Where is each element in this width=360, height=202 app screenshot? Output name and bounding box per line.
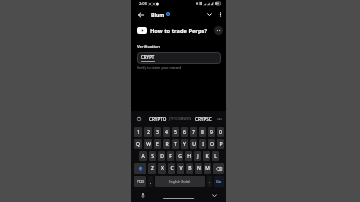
- button[interactable]: M: [204, 163, 211, 174]
- button[interactable]: T: [172, 139, 179, 149]
- button[interactable]: V: [177, 163, 184, 174]
- button[interactable]: Shift: [134, 163, 146, 174]
- button[interactable]: F: [167, 151, 174, 161]
- button[interactable]: 3: [154, 127, 161, 137]
- button[interactable]: Back: [135, 9, 146, 20]
- staticText: Go: [216, 179, 222, 184]
- staticText: F: [169, 153, 172, 160]
- button[interactable]: R: [163, 139, 170, 149]
- button[interactable]: 1: [134, 127, 142, 137]
- staticText: O: [210, 141, 214, 148]
- staticText: B: [188, 165, 192, 172]
- button[interactable]: 6: [181, 127, 188, 137]
- button[interactable]: CRYPTO: [146, 111, 169, 126]
- staticText: G: [178, 153, 182, 160]
- button[interactable]: Expand: [204, 9, 215, 20]
- button[interactable]: N: [195, 163, 202, 174]
- button[interactable]: Go: [214, 176, 224, 187]
- button[interactable]: P: [217, 139, 224, 149]
- button[interactable]: CRYPSC: [192, 111, 215, 126]
- button[interactable]: 8: [199, 127, 206, 137]
- button[interactable]: O: [208, 139, 215, 149]
- staticText: 0: [219, 129, 222, 136]
- button[interactable]: 7: [190, 127, 197, 137]
- button[interactable]: .: [207, 176, 212, 187]
- staticText: D: [160, 153, 164, 160]
- button[interactable]: Voice input: [138, 191, 147, 200]
- staticText: Y: [183, 141, 186, 148]
- button[interactable]: 4: [163, 127, 170, 137]
- staticText: ,: [150, 179, 152, 185]
- button[interactable]: L: [212, 151, 219, 161]
- button[interactable]: CRYPT: [137, 52, 221, 64]
- staticText: U: [192, 141, 196, 148]
- staticText: 2:05: [139, 1, 147, 6]
- button[interactable]: D: [158, 151, 165, 161]
- staticText: S: [151, 153, 154, 160]
- staticText: Z: [151, 165, 154, 172]
- button[interactable]: More suggestions: [215, 115, 223, 123]
- button[interactable]: X: [158, 163, 166, 174]
- button[interactable]: C: [168, 163, 175, 174]
- button[interactable]: Video options: [214, 26, 223, 35]
- staticText: 6: [183, 129, 186, 136]
- button[interactable]: 5: [172, 127, 179, 137]
- button[interactable]: Clipboard: [135, 115, 143, 123]
- staticText: 4: [165, 129, 168, 136]
- button[interactable]: Z: [148, 163, 156, 174]
- staticText: T: [174, 141, 177, 148]
- staticText: CRYPT: [141, 54, 155, 60]
- button[interactable]: English (India): [155, 176, 205, 187]
- staticText: M: [205, 165, 210, 172]
- staticText: 1: [137, 129, 140, 136]
- staticText: CRYPTO: [149, 116, 167, 122]
- button[interactable]: JTPO3IBWIN: [169, 111, 192, 126]
- staticText: CRYPSC: [195, 116, 212, 122]
- button[interactable]: Y: [181, 139, 188, 149]
- staticText: 7: [192, 129, 195, 136]
- button[interactable]: E: [154, 139, 161, 149]
- staticText: JTPO3IBWIN: [169, 116, 192, 121]
- staticText: How to trade Perps?: [150, 27, 208, 35]
- button[interactable]: S: [149, 151, 156, 161]
- staticText: X: [161, 165, 164, 172]
- staticText: Blum: [151, 11, 165, 18]
- button[interactable]: U: [190, 139, 197, 149]
- staticText: 5: [174, 129, 177, 136]
- button[interactable]: I: [199, 139, 206, 149]
- button[interactable]: Hide keyboard: [210, 191, 219, 200]
- staticText: Verification: [137, 44, 160, 50]
- button[interactable]: Backspace: [213, 163, 224, 174]
- staticText: J: [197, 153, 199, 160]
- button[interactable]: More options: [215, 9, 226, 20]
- button[interactable]: A: [139, 151, 147, 161]
- button[interactable]: J: [194, 151, 201, 161]
- staticText: C: [170, 165, 174, 172]
- staticText: ?123: [137, 180, 144, 184]
- staticText: W: [146, 141, 151, 148]
- staticText: Verify to claim your reward: [137, 65, 182, 70]
- button[interactable]: 2: [144, 127, 152, 137]
- button[interactable]: ,: [148, 176, 153, 187]
- button[interactable]: Q: [134, 139, 142, 149]
- staticText: L: [214, 153, 217, 160]
- button[interactable]: W: [144, 139, 152, 149]
- staticText: 2: [147, 129, 150, 136]
- staticText: English (India): [169, 180, 191, 184]
- staticText: Q: [136, 141, 140, 148]
- staticText: R: [165, 141, 169, 148]
- button[interactable]: H: [185, 151, 192, 161]
- button[interactable]: ?123: [134, 176, 146, 187]
- button[interactable]: K: [203, 151, 210, 161]
- button[interactable]: How to trade Perps?: [137, 21, 223, 40]
- button[interactable]: 0: [217, 127, 224, 137]
- staticText: 8: [201, 129, 204, 136]
- staticText: K: [205, 153, 209, 160]
- button[interactable]: 9: [208, 127, 215, 137]
- staticText: H: [187, 153, 191, 160]
- button[interactable]: B: [186, 163, 193, 174]
- staticText: V: [179, 165, 183, 172]
- staticText: A: [141, 153, 145, 160]
- staticText: 3: [156, 129, 159, 136]
- button[interactable]: G: [176, 151, 183, 161]
